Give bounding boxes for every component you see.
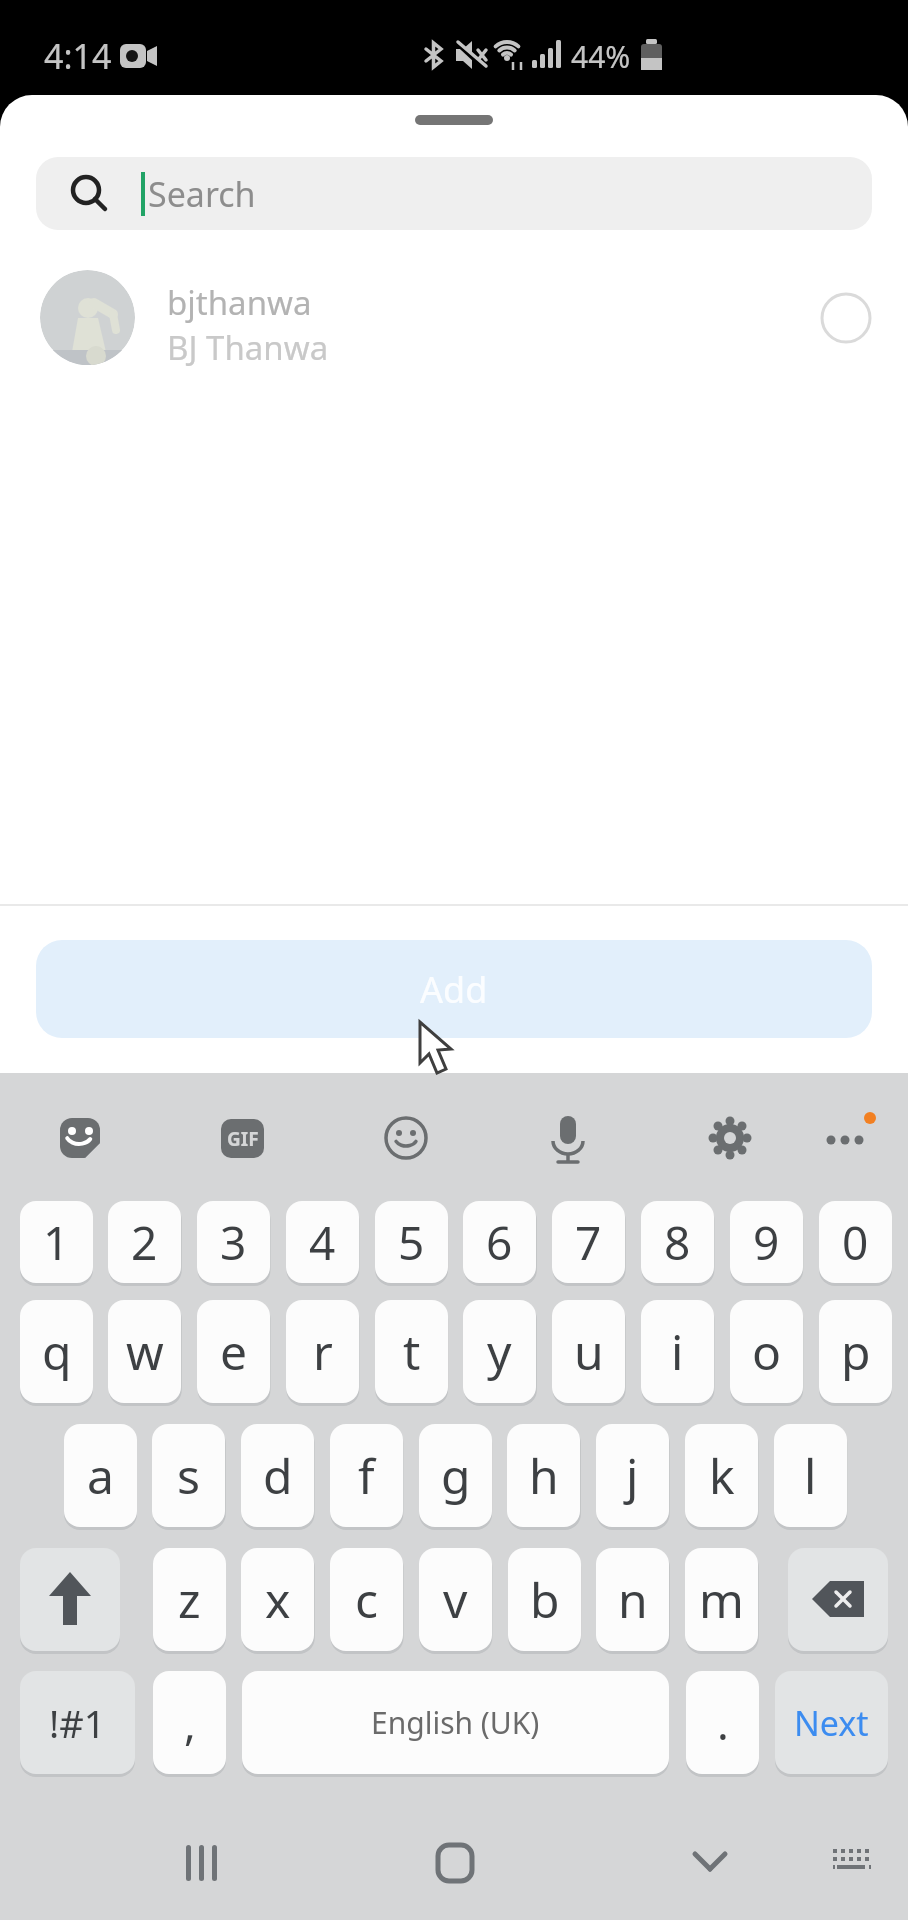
staticText: e xyxy=(220,1319,248,1384)
staticText: y xyxy=(487,1319,512,1384)
staticText: l xyxy=(804,1443,817,1508)
staticText: u xyxy=(574,1319,604,1384)
staticText: b xyxy=(530,1567,560,1632)
staticText: v xyxy=(443,1567,468,1632)
button[interactable]: y xyxy=(463,1300,536,1403)
button[interactable]: t xyxy=(375,1300,448,1403)
button[interactable]: Next xyxy=(775,1671,888,1774)
button[interactable]: 9 xyxy=(730,1201,803,1283)
button[interactable]: o xyxy=(730,1300,803,1403)
button[interactable]: 1 xyxy=(20,1201,93,1283)
button[interactable]: b xyxy=(508,1548,581,1651)
staticText: English (UK) xyxy=(371,1702,540,1743)
button[interactable]: c xyxy=(330,1548,403,1651)
staticText: j xyxy=(626,1443,639,1508)
button[interactable]: 3 xyxy=(197,1201,270,1283)
staticText: 5 xyxy=(398,1211,425,1274)
staticText: s xyxy=(177,1443,200,1508)
button[interactable]: j xyxy=(596,1424,669,1527)
button[interactable]: e xyxy=(197,1300,270,1403)
button[interactable]: z xyxy=(153,1548,226,1651)
staticText: p xyxy=(841,1319,871,1384)
staticText: 3 xyxy=(220,1211,247,1274)
button[interactable]: u xyxy=(552,1300,625,1403)
staticText: h xyxy=(529,1443,559,1508)
button[interactable]: r xyxy=(286,1300,359,1403)
staticText: x xyxy=(265,1567,291,1632)
staticText: GIF xyxy=(227,1126,259,1152)
button[interactable]: Search xyxy=(36,157,872,230)
staticText: f xyxy=(358,1443,375,1508)
button[interactable]: l xyxy=(774,1424,847,1527)
button[interactable]: d xyxy=(241,1424,314,1527)
button[interactable]: 8 xyxy=(641,1201,714,1283)
staticText: 44% xyxy=(571,36,631,77)
staticText: 6 xyxy=(486,1211,513,1274)
button[interactable] xyxy=(60,1118,100,1158)
staticText: o xyxy=(752,1319,782,1384)
staticText: Next xyxy=(794,1700,869,1746)
staticText: 7 xyxy=(575,1211,602,1274)
button[interactable]: v xyxy=(419,1548,492,1651)
button[interactable]: h xyxy=(507,1424,580,1527)
button[interactable]: p xyxy=(819,1300,892,1403)
button[interactable]: English (UK) xyxy=(242,1671,669,1774)
staticText: 1 xyxy=(43,1211,70,1274)
button[interactable]: , xyxy=(153,1671,226,1774)
staticText: Search xyxy=(148,171,256,217)
button[interactable]: g xyxy=(419,1424,492,1527)
staticText: d xyxy=(263,1443,293,1508)
staticText: r xyxy=(313,1319,333,1384)
staticText: k xyxy=(709,1443,735,1508)
button[interactable]: m xyxy=(685,1548,758,1651)
staticText: . xyxy=(717,1693,729,1753)
button[interactable]: f xyxy=(330,1424,403,1527)
staticText: t xyxy=(403,1319,421,1384)
staticText: 4:14 xyxy=(44,33,112,79)
button[interactable]: a xyxy=(64,1424,137,1527)
button[interactable]: x xyxy=(241,1548,314,1651)
staticText: g xyxy=(441,1443,471,1508)
staticText: a xyxy=(87,1443,114,1508)
staticText: bjthanwa xyxy=(167,280,312,325)
staticText: 2 xyxy=(131,1211,158,1274)
button[interactable]: 5 xyxy=(375,1201,448,1283)
button[interactable]: GIF xyxy=(221,1119,264,1158)
staticText: q xyxy=(42,1319,72,1384)
staticText: 9 xyxy=(753,1211,780,1274)
staticText: w xyxy=(126,1319,164,1384)
button[interactable]: 4 xyxy=(286,1201,359,1283)
staticText: !#1 xyxy=(49,1697,106,1749)
button[interactable] xyxy=(788,1548,888,1651)
button[interactable]: 7 xyxy=(552,1201,625,1283)
staticText: Add xyxy=(420,965,488,1014)
button[interactable]: !#1 xyxy=(20,1671,135,1774)
staticText: z xyxy=(178,1567,201,1632)
staticText: 8 xyxy=(664,1211,691,1274)
staticText: 4 xyxy=(309,1211,336,1274)
button[interactable]: k xyxy=(685,1424,758,1527)
button[interactable]: 6 xyxy=(463,1201,536,1283)
staticText: BJ Thanwa xyxy=(167,325,329,370)
button[interactable]: 0 xyxy=(819,1201,892,1283)
staticText: n xyxy=(618,1567,648,1632)
button[interactable]: q xyxy=(20,1300,93,1403)
button[interactable]: s xyxy=(152,1424,225,1527)
button[interactable]: i xyxy=(641,1300,714,1403)
button[interactable]: w xyxy=(108,1300,181,1403)
staticText: , xyxy=(184,1693,196,1753)
staticText: m xyxy=(699,1567,744,1632)
staticText: i xyxy=(671,1319,684,1384)
button[interactable]: bjthanwa xyxy=(0,270,908,365)
staticText: c xyxy=(355,1567,379,1632)
button[interactable]: 2 xyxy=(108,1201,181,1283)
button[interactable]: . xyxy=(686,1671,759,1774)
button[interactable]: Add xyxy=(36,940,872,1038)
button[interactable]: n xyxy=(596,1548,669,1651)
staticText: 0 xyxy=(842,1211,869,1274)
button[interactable] xyxy=(20,1548,120,1651)
